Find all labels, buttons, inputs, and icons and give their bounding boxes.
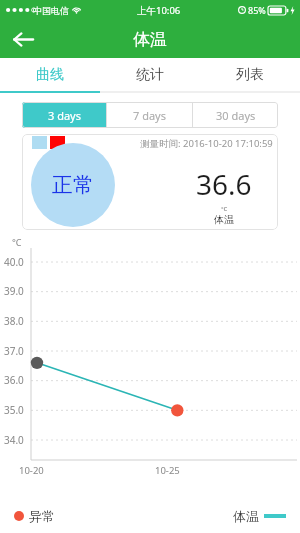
staticText: 37.0	[4, 344, 24, 358]
button[interactable]: 列表	[200, 58, 300, 91]
staticText: 36.6	[196, 165, 252, 203]
button[interactable]: 测量时间: 2016-10-20 17:10:59	[22, 134, 278, 230]
staticText: 40.0	[4, 255, 24, 269]
staticText: 异常	[29, 508, 55, 524]
staticText: 39.0	[4, 284, 24, 298]
staticText: 体温	[214, 213, 234, 226]
staticText: 34.0	[4, 433, 24, 447]
staticText: 3 days	[48, 108, 81, 123]
staticText: 30 days	[216, 108, 256, 123]
staticText: 10-25	[155, 464, 180, 477]
button[interactable]: Back	[0, 20, 46, 58]
staticText: 列表	[236, 66, 264, 84]
staticText: 中国电信	[33, 5, 69, 16]
staticText: 85%	[248, 4, 266, 16]
staticText: 上午10:06	[137, 4, 181, 17]
staticText: 体温	[233, 508, 259, 524]
button[interactable]: 3 days	[22, 102, 106, 128]
button[interactable]: 体温	[233, 508, 286, 524]
staticText: 正常	[52, 172, 94, 198]
button[interactable]: 曲线	[0, 58, 100, 91]
staticText: 7 days	[133, 108, 166, 123]
staticText: 35.0	[4, 403, 24, 417]
button[interactable]: 异常	[14, 508, 55, 524]
staticText: 体温	[133, 29, 167, 50]
staticText: °C	[221, 205, 228, 213]
button[interactable]: 统计	[100, 58, 200, 91]
button[interactable]: 30 days	[193, 102, 278, 128]
staticText: 测量时间: 2016-10-20 17:10:59	[140, 137, 273, 150]
staticText: 38.0	[4, 314, 24, 328]
button[interactable]: 7 days	[107, 102, 192, 128]
staticText: 10-20	[19, 464, 44, 477]
staticText: °C	[12, 236, 22, 248]
staticText: 曲线	[36, 66, 64, 84]
staticText: 统计	[136, 66, 164, 84]
staticText: 36.0	[4, 373, 24, 387]
